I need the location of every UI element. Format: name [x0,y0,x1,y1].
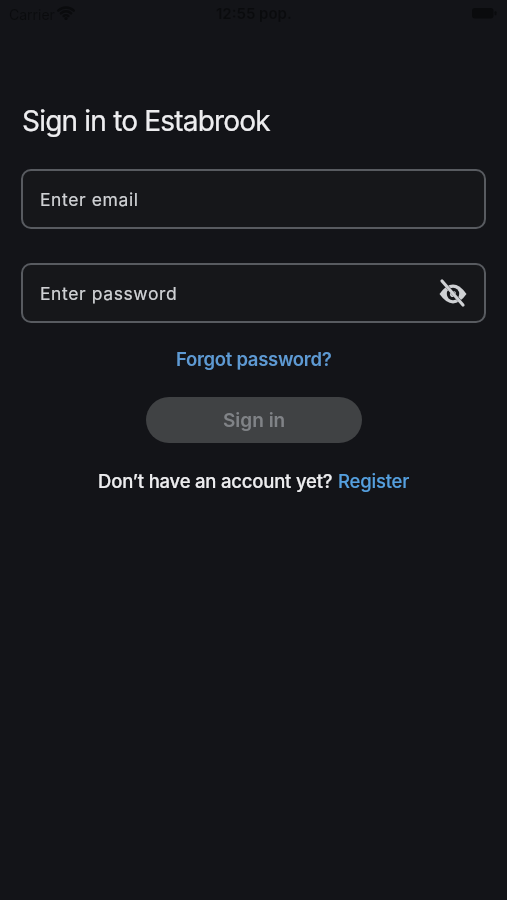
button[interactable]: Sign in [146,397,362,443]
button[interactable]: Enter password [21,263,486,323]
staticText: Sign in to Estabrook [22,104,270,138]
staticText: Enter email [40,189,139,210]
button[interactable] [438,278,468,308]
staticText: 12:55 pop. [216,4,292,22]
staticText: Carrier [9,6,55,23]
button[interactable]: Register [338,470,410,492]
button[interactable]: Forgot password? [176,348,332,370]
button[interactable]: Enter email [21,169,486,229]
staticText: Sign in [223,409,286,432]
staticText: Don’t have an account yet? [98,470,338,492]
staticText: Enter password [40,283,178,304]
